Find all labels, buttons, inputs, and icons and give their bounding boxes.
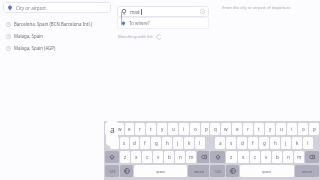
button[interactable]: i [179,123,189,135]
button[interactable]: q [105,123,114,135]
button[interactable]: k [292,137,302,149]
button[interactable]: return [188,165,211,177]
button[interactable]: e [232,123,242,135]
button[interactable]: u [168,123,178,135]
button[interactable]: space [134,165,187,177]
button[interactable]: l [303,137,313,149]
button[interactable]: l [195,137,205,149]
button[interactable]: q [210,123,220,135]
staticText: City or airport [16,5,46,11]
button[interactable]: o [190,123,200,135]
staticText: b [276,154,279,160]
button[interactable]: y [265,123,275,135]
button[interactable]: Malaga, Spain (AGP) [3,42,111,54]
button[interactable]: Shift [105,151,119,163]
staticText: d [241,140,244,146]
button[interactable]: r [243,123,253,135]
button[interactable]: g [259,137,269,149]
button[interactable]: c [250,151,260,163]
button[interactable]: x [238,151,249,163]
button[interactable]: p [201,123,211,135]
staticText: Barcelona, Spain (BCN Barcelona Intl.) [14,21,93,27]
staticText: z [124,154,127,160]
button[interactable]: h [270,137,280,149]
button[interactable]: Matching with list [118,34,162,40]
button[interactable]: z [226,151,237,163]
staticText: q [108,126,111,132]
button[interactable]: k [184,137,194,149]
button[interactable]: d [130,137,139,149]
button[interactable]: To where? [117,17,209,29]
button[interactable]: v [153,151,163,163]
button[interactable]: space [240,165,294,177]
button[interactable]: Backspace [197,151,211,163]
button[interactable]: n [283,151,293,163]
button[interactable]: m [186,151,196,163]
staticText: j [177,140,179,146]
button[interactable]: a [106,121,118,146]
button[interactable]: h [162,137,172,149]
button[interactable]: return [295,165,319,177]
button[interactable]: m [294,151,304,163]
button[interactable]: Backspace [305,151,319,163]
button[interactable]: s [226,137,236,149]
button[interactable]: Barcelona, Spain (BCN Barcelona Intl.) [3,18,111,30]
staticText: y [269,126,272,132]
staticText: 123 [109,169,115,174]
staticText: p [313,126,316,132]
button[interactable]: r [135,123,145,135]
button[interactable]: w [115,123,124,135]
button[interactable]: d [237,137,247,149]
button[interactable]: c [142,151,152,163]
button[interactable]: j [281,137,291,149]
staticText: c [254,154,257,160]
button[interactable]: g [151,137,161,149]
staticText: mad [130,9,140,15]
staticText: z [230,154,233,160]
button[interactable]: 123 [105,165,119,177]
button[interactable]: mad [117,6,209,17]
staticText: g [263,140,266,146]
button[interactable]: Emoji [120,165,133,177]
button[interactable]: x [131,151,141,163]
staticText: f [144,140,146,146]
button[interactable]: a [215,137,225,149]
staticText: return [194,169,205,174]
button[interactable]: t [254,123,264,135]
button[interactable]: n [175,151,185,163]
button[interactable]: u [276,123,286,135]
button[interactable]: b [164,151,174,163]
staticText: s [230,140,233,146]
staticText: a [219,140,222,146]
button[interactable]: z [120,151,130,163]
staticText: i [291,126,293,132]
button[interactable]: f [140,137,150,149]
button[interactable]: a [110,137,119,149]
button[interactable]: w [221,123,231,135]
staticText: p [205,126,208,132]
staticText: v [157,154,160,160]
button[interactable]: Emoji [226,165,239,177]
button[interactable]: e [125,123,134,135]
button[interactable]: 123 [210,165,225,177]
staticText: d [133,140,136,146]
staticText: l [199,140,201,146]
staticText: y [161,126,164,132]
button[interactable]: t [146,123,156,135]
button[interactable]: s [120,137,129,149]
button[interactable]: y [157,123,167,135]
button[interactable]: f [248,137,258,149]
button[interactable]: i [287,123,297,135]
staticText: e [128,126,131,132]
button[interactable]: b [272,151,282,163]
button[interactable]: City or airport [3,2,111,13]
staticText: n [287,154,290,160]
button[interactable]: Clear text [200,9,205,14]
button[interactable]: Malaga, Spain [3,30,111,42]
button[interactable]: j [173,137,183,149]
button[interactable]: p [309,123,319,135]
button[interactable]: o [298,123,308,135]
button[interactable]: v [261,151,271,163]
button[interactable]: Shift [210,151,225,163]
staticText: space [262,169,272,174]
